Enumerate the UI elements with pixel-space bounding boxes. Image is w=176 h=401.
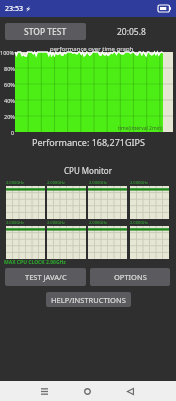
button[interactable]: TEST JAVA/C bbox=[5, 268, 86, 286]
staticText: OPTIONS bbox=[114, 272, 147, 282]
button[interactable]: Home bbox=[74, 381, 100, 401]
staticText: Performance: 168,271GIPS bbox=[32, 136, 145, 148]
staticText: 2.000GHz bbox=[130, 180, 148, 185]
staticText: 2.000GHz bbox=[89, 220, 107, 225]
staticText: TEST JAVA/C bbox=[25, 272, 67, 282]
button[interactable]: Recent apps bbox=[31, 381, 57, 401]
staticText: 20% bbox=[4, 113, 15, 120]
staticText: 60% bbox=[4, 81, 15, 88]
button[interactable]: HELP/INSTRUCTIONS bbox=[46, 292, 131, 307]
staticText: 2.000GHz bbox=[89, 180, 107, 185]
staticText: 2.000GHz bbox=[47, 180, 65, 185]
staticText: 2.000GHz bbox=[6, 220, 24, 225]
staticText: 40% bbox=[4, 97, 15, 104]
button[interactable]: STOP TEST bbox=[5, 23, 86, 40]
staticText: 0 bbox=[11, 129, 15, 136]
staticText: 20:05.8 bbox=[117, 26, 146, 38]
staticText: performance over time graph bbox=[50, 45, 134, 53]
staticText: STOP TEST bbox=[24, 26, 67, 38]
staticText: 2.000GHz bbox=[47, 220, 65, 225]
staticText: 100% bbox=[0, 49, 15, 56]
staticText: 2.000GHz bbox=[6, 180, 24, 185]
staticText: time(interval 2min) bbox=[118, 125, 163, 132]
staticText: 2.000GHz bbox=[130, 220, 148, 225]
staticText: MAX CPU CLOCK 2.00GHz bbox=[4, 259, 66, 266]
staticText: 80% bbox=[4, 65, 15, 72]
staticText: 23:53 bbox=[5, 4, 23, 14]
button[interactable]: Back bbox=[117, 381, 143, 401]
button[interactable]: OPTIONS bbox=[90, 268, 170, 286]
staticText: CPU Monitor bbox=[64, 165, 112, 176]
staticText: HELP/INSTRUCTIONS bbox=[51, 295, 126, 305]
